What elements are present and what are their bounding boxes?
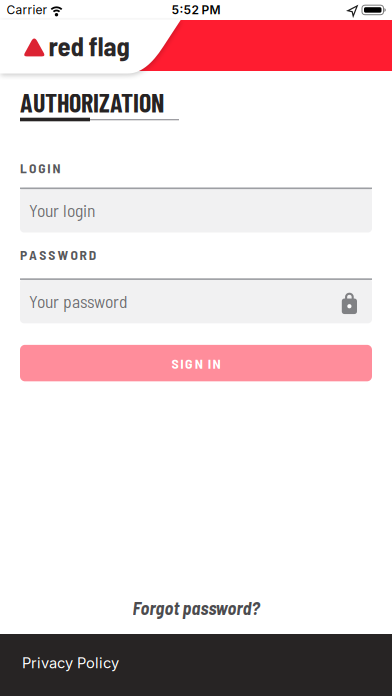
staticText: O <box>70 246 77 263</box>
staticText: I <box>47 160 50 176</box>
staticText: S <box>171 355 178 371</box>
staticText: S <box>39 246 46 263</box>
staticText: AUTHORIZATION <box>20 86 164 118</box>
staticText: P <box>20 246 27 263</box>
button[interactable]: Forgot password? <box>132 597 259 618</box>
staticText: N <box>195 355 203 371</box>
staticText: A <box>29 246 37 263</box>
staticText: L <box>20 160 27 176</box>
staticText: O <box>29 160 36 176</box>
staticText: Your password <box>29 290 128 311</box>
button[interactable]: Your password <box>20 278 372 323</box>
button[interactable]: Your login <box>20 187 372 232</box>
staticText: D <box>89 246 96 263</box>
staticText: S <box>48 246 55 263</box>
staticText: 5:52 PM <box>171 3 220 17</box>
staticText: W <box>57 246 68 263</box>
button[interactable]: S <box>20 345 372 381</box>
staticText: G <box>185 355 193 371</box>
staticText: Carrier <box>6 3 47 17</box>
staticText: R <box>80 246 87 263</box>
staticText: Privacy Policy <box>22 654 119 672</box>
staticText: Your login <box>29 199 95 221</box>
staticText: I <box>180 355 183 371</box>
staticText: N <box>52 160 60 176</box>
staticText: G <box>38 160 45 176</box>
staticText: red flag <box>48 29 129 61</box>
button[interactable]: Privacy Policy <box>0 634 392 696</box>
staticText: I <box>208 355 211 371</box>
staticText: N <box>213 355 221 371</box>
staticText: Forgot password? <box>132 597 259 618</box>
